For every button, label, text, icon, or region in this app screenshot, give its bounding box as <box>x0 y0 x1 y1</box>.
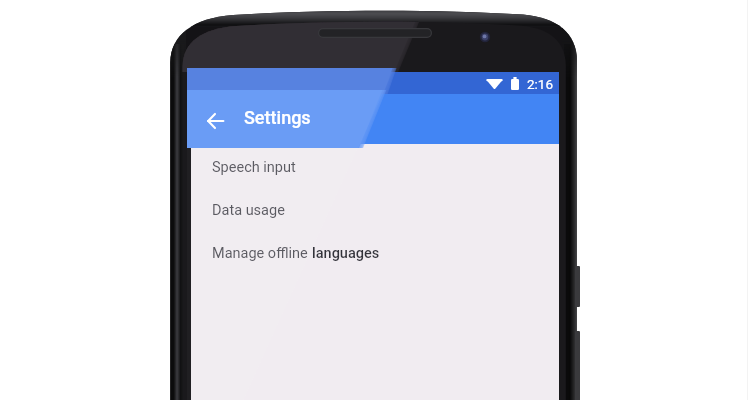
button[interactable]: Navigate back <box>198 103 233 138</box>
staticText: languages <box>312 245 380 262</box>
staticText: Manage offline <box>212 245 312 262</box>
staticText: Settings <box>244 107 311 128</box>
staticText: Speech input <box>212 159 296 176</box>
staticText: Data usage <box>212 202 285 219</box>
staticText: 2:16 <box>527 76 554 92</box>
button[interactable]: Manage offline <box>191 230 559 273</box>
button[interactable]: Data usage <box>191 187 559 230</box>
button[interactable]: Speech input <box>191 144 559 187</box>
